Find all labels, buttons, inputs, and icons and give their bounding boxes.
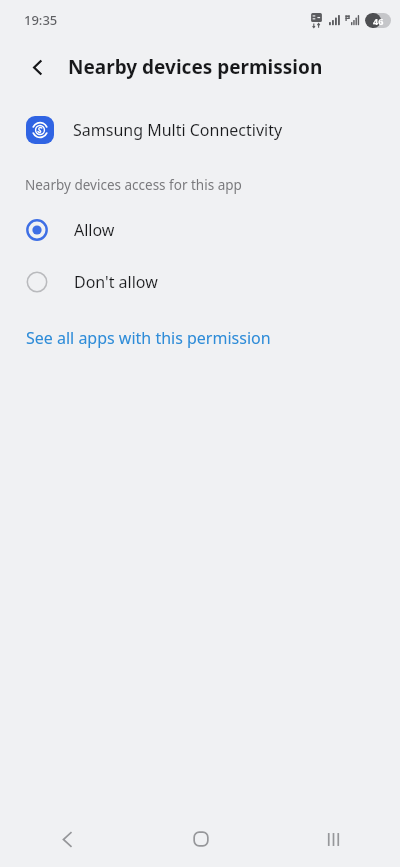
staticText: Nearby devices permission <box>68 54 323 80</box>
staticText: 19:35 <box>24 11 58 29</box>
staticText: See all apps with this permission <box>26 327 271 349</box>
button[interactable]: Allow <box>0 211 400 249</box>
button[interactable]: Samsung Multi Connectivity <box>0 110 400 150</box>
staticText: 46 <box>373 15 384 27</box>
button[interactable]: See all apps with this permission <box>0 321 400 355</box>
button[interactable]: Don't allow <box>0 263 400 301</box>
staticText: Samsung Multi Connectivity <box>73 119 283 141</box>
staticText: Allow <box>74 219 115 241</box>
button[interactable]: Recent apps <box>267 811 400 867</box>
staticText: Don't allow <box>74 271 158 293</box>
staticText: Nearby devices access for this app <box>25 176 242 194</box>
button[interactable]: Home <box>134 811 267 867</box>
button[interactable]: Back <box>0 811 134 867</box>
button[interactable]: Back <box>20 50 54 84</box>
